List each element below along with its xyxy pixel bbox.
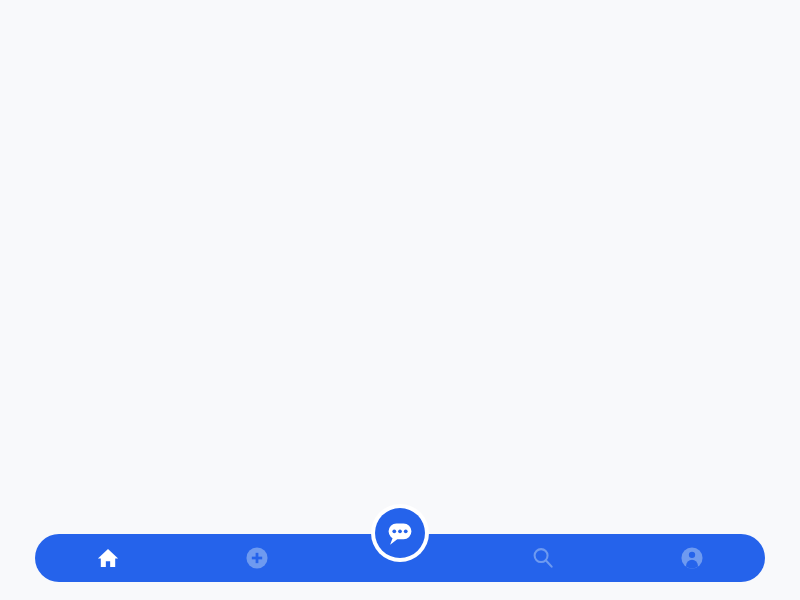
button[interactable]: Search xyxy=(519,534,567,582)
button[interactable]: New message xyxy=(371,504,429,562)
button[interactable]: Add xyxy=(233,534,281,582)
button[interactable]: Home xyxy=(84,534,132,582)
button[interactable]: Profile xyxy=(668,534,716,582)
